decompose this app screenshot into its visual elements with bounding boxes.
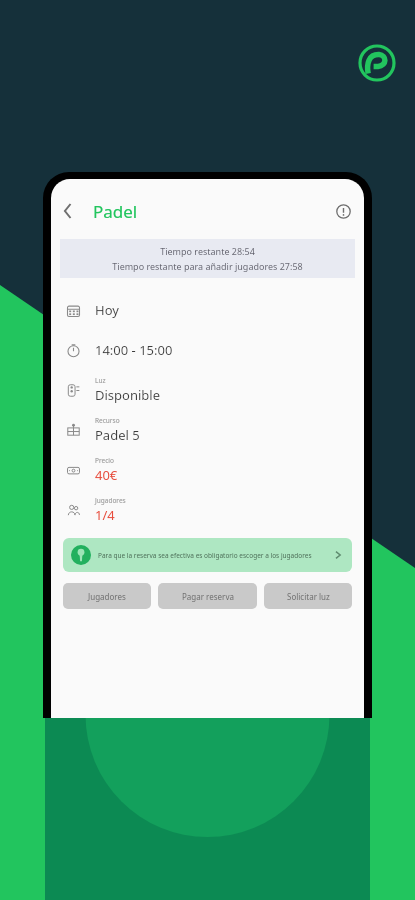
button[interactable]: Jugadores: [51, 496, 364, 524]
staticText: Padel: [93, 200, 138, 223]
staticText: Tiempo restante para añadir jugadores 27…: [112, 260, 303, 272]
button[interactable]: Pagar reserva: [158, 583, 257, 609]
staticText: Hoy: [95, 301, 119, 319]
staticText: Solicitar luz: [287, 591, 330, 602]
staticText: Jugadores: [88, 591, 126, 602]
button[interactable]: Back: [51, 194, 85, 228]
button[interactable]: Luz: [51, 376, 364, 404]
staticText: Padel 5: [95, 426, 140, 444]
staticText: Jugadores: [95, 496, 126, 505]
staticText: 1/4: [95, 506, 115, 524]
button[interactable]: Information: [326, 194, 360, 228]
staticText: Pagar reserva: [182, 591, 234, 602]
button[interactable]: 14:00 - 15:00: [51, 340, 364, 360]
button[interactable]: Recurso: [51, 416, 364, 444]
button[interactable]: Hoy: [51, 300, 364, 320]
button[interactable]: Precio: [51, 456, 364, 484]
button[interactable]: Jugadores: [63, 583, 151, 609]
button[interactable]: Solicitar luz: [264, 583, 352, 609]
staticText: Tiempo restante 28:54: [160, 245, 255, 257]
staticText: Disponible: [95, 386, 161, 404]
staticText: Precio: [95, 456, 114, 465]
staticText: 14:00 - 15:00: [95, 341, 173, 359]
staticText: 40€: [95, 466, 118, 484]
staticText: Luz: [95, 376, 106, 385]
button[interactable]: Para que la reserva sea efectiva es obli…: [63, 538, 352, 572]
staticText: Para que la reserva sea efectiva es obli…: [98, 551, 328, 560]
other: App logo: [358, 44, 396, 82]
staticText: Recurso: [95, 416, 120, 425]
